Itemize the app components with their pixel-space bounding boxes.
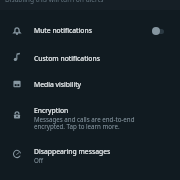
staticText: Messages and calls are end-to-end encryp… — [34, 115, 149, 131]
staticText: Disabling this will turn off alerts — [5, 0, 104, 4]
staticText: Disappearing messages — [34, 147, 111, 156]
staticText: Media visibility — [34, 80, 82, 89]
button[interactable]: Disappearing messages — [0, 140, 180, 172]
button[interactable]: Media visibility — [0, 71, 180, 98]
button[interactable]: Mute notifications — [0, 17, 180, 44]
button[interactable]: Encryption — [0, 98, 180, 138]
staticText: Mute notifications — [34, 26, 92, 35]
staticText: Custom notifications — [34, 54, 100, 63]
button[interactable]: Custom notifications — [0, 44, 180, 71]
staticText: Off — [34, 156, 44, 164]
staticText: Encryption — [34, 106, 69, 115]
